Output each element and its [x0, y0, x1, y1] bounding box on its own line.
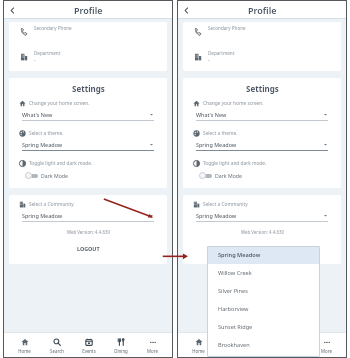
button[interactable]: Spring Meadow	[22, 212, 154, 222]
staticText: Spring Meadow	[22, 141, 149, 148]
button[interactable]: Events	[79, 336, 99, 356]
staticText: Dark Mode	[215, 172, 242, 179]
staticText: Sunset Ridge	[218, 323, 253, 331]
button[interactable]: Silver Pines	[207, 282, 320, 300]
button[interactable]: Harborview	[207, 300, 320, 318]
button[interactable]: Secondary Phone	[9, 24, 167, 40]
staticText: Toggle light and dark mode.	[203, 160, 267, 167]
button[interactable]: What's New	[22, 111, 154, 121]
staticText: Change your home screen.	[29, 100, 90, 107]
staticText: Home	[192, 348, 205, 354]
button[interactable]: Spring Meadow	[22, 141, 154, 151]
button[interactable]: Willow Creek	[207, 264, 320, 282]
button[interactable]: Spring Meadow	[207, 246, 320, 264]
staticText: Profile	[74, 4, 103, 16]
staticText: More	[321, 348, 332, 354]
staticText: LOGOUT	[251, 245, 274, 252]
staticText: Change your home screen.	[203, 100, 264, 107]
staticText: Select a theme.	[203, 130, 238, 137]
button[interactable]: LOGOUT	[67, 243, 110, 254]
staticText: Settings	[72, 83, 105, 94]
staticText: Spring Meadow	[218, 251, 261, 259]
button[interactable]: Dining	[111, 336, 131, 356]
button[interactable]: LOGOUT	[241, 243, 284, 254]
staticText: Secondary Phone	[208, 25, 246, 31]
staticText: Harborview	[218, 305, 249, 313]
staticText: More	[147, 348, 158, 354]
staticText: Web Version: 4.4.630	[67, 229, 110, 235]
staticText: Spring Meadow	[196, 141, 323, 148]
staticText: Department	[208, 50, 235, 56]
staticText: Home	[18, 348, 31, 354]
staticText: What's New	[22, 111, 149, 118]
staticText: Search	[50, 348, 64, 354]
button[interactable]: Search	[221, 336, 241, 356]
button[interactable]: Spring Meadow	[196, 212, 328, 222]
staticText: Select a Community	[29, 201, 74, 208]
button[interactable]: Back	[177, 1, 195, 19]
button[interactable]: Department	[9, 49, 167, 65]
button[interactable]: Secondary Phone	[183, 24, 341, 40]
button[interactable]: What's New	[196, 111, 328, 121]
staticText: Select a Community	[203, 201, 248, 208]
staticText: LOGOUT	[77, 245, 100, 252]
staticText: Silver Pines	[218, 287, 248, 295]
staticText: -	[34, 57, 36, 63]
staticText: Profile	[248, 4, 277, 16]
button[interactable]: Spring Meadow	[196, 141, 328, 151]
staticText: Brookhaven	[218, 341, 250, 349]
button[interactable]: Brookhaven	[207, 336, 320, 354]
button[interactable]: Dark Mode	[25, 172, 68, 179]
button[interactable]: Dark Mode	[199, 172, 242, 179]
button[interactable]: Home	[189, 336, 208, 356]
button[interactable]: Sunset Ridge	[207, 318, 320, 336]
button[interactable]: Back	[3, 1, 21, 19]
staticText: Willow Creek	[218, 269, 252, 277]
staticText: Spring Meadow	[22, 212, 149, 219]
staticText: Dining	[114, 348, 128, 354]
staticText: What's New	[196, 111, 323, 118]
staticText: Settings	[246, 83, 279, 94]
button[interactable]: More	[318, 336, 335, 356]
button[interactable]: Search	[47, 336, 67, 356]
staticText: Events	[82, 348, 96, 354]
staticText: Secondary Phone	[34, 25, 72, 31]
button[interactable]: Department	[183, 49, 341, 65]
staticText: -	[208, 57, 210, 63]
staticText: Spring Meadow	[196, 212, 323, 219]
button[interactable]: Home	[15, 336, 34, 356]
button[interactable]: More	[144, 336, 161, 356]
staticText: Dark Mode	[41, 172, 68, 179]
staticText: Toggle light and dark mode.	[29, 160, 93, 167]
staticText: Select a theme.	[29, 130, 64, 137]
staticText: Department	[34, 50, 61, 56]
staticText: Web Version: 4.4.630	[241, 229, 284, 235]
